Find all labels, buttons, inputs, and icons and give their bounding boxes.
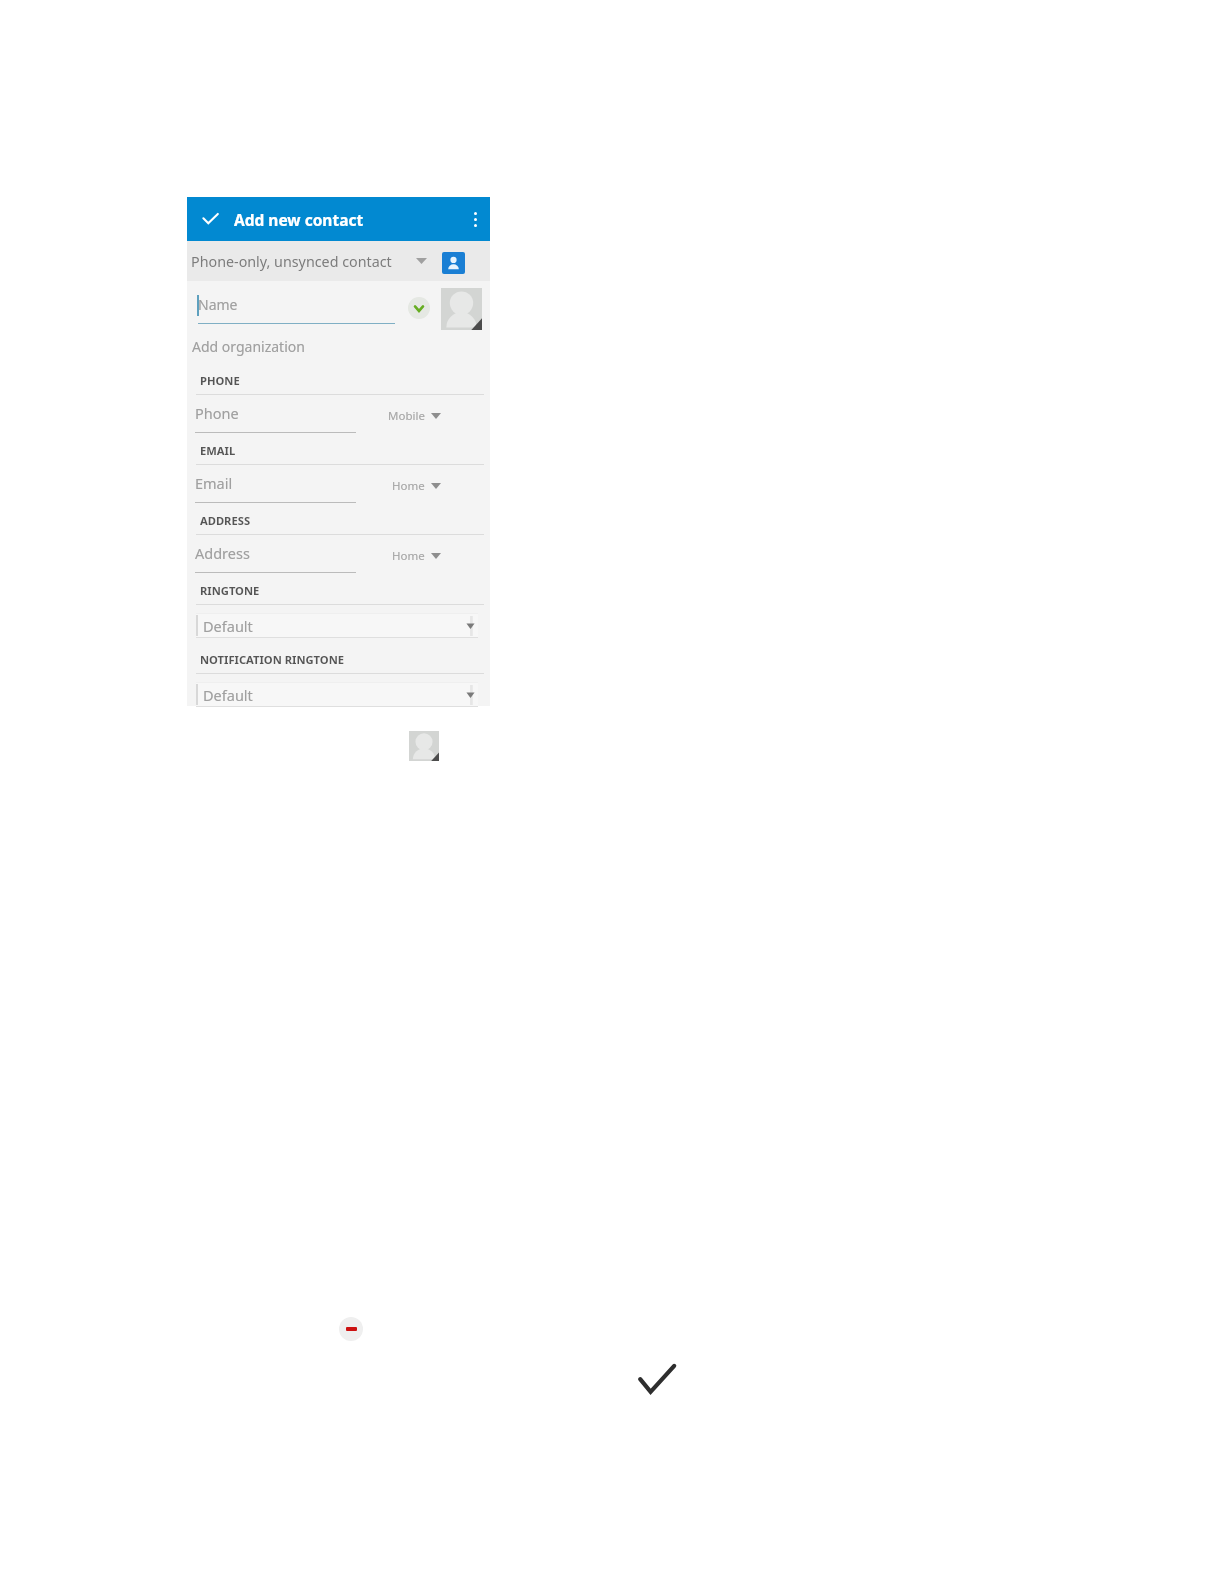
staticText: Add organization [192,337,305,356]
button[interactable]: Add organization [187,333,490,359]
staticText: Default [203,685,253,705]
button[interactable]: Account [442,252,465,274]
staticText: Phone [195,403,239,423]
button[interactable]: Home [363,478,441,494]
button[interactable]: More options [460,197,490,241]
staticText: ADDRESS [200,513,251,528]
staticText: Phone-only, unsynced contact [191,252,392,271]
staticText: Home [392,548,425,564]
button[interactable]: Phone-only, unsynced contact [187,241,490,281]
staticText: Name [198,295,238,314]
other: Done [637,1363,677,1399]
staticText: Address [195,543,250,563]
staticText: EMAIL [200,443,236,458]
button[interactable]: Choose ringtone [196,682,478,707]
button[interactable]: Mobile [363,408,441,424]
staticText: Default [203,616,253,636]
staticText: Email [195,473,233,493]
button[interactable]: Home [363,548,441,564]
staticText: PHONE [200,373,240,388]
staticText: RINGTONE [200,583,260,598]
button[interactable]: Remove [339,1317,363,1341]
button[interactable]: Contact photo [409,731,439,761]
button[interactable]: Choose ringtone [196,613,478,638]
button[interactable]: Add photo [441,288,482,330]
staticText: NOTIFICATION RINGTONE [200,652,345,667]
staticText: Mobile [388,408,425,424]
staticText: Home [392,478,425,494]
button[interactable]: Expand name fields [408,297,430,319]
staticText: Add new contact [234,209,364,230]
button[interactable]: Save contact [187,197,234,241]
